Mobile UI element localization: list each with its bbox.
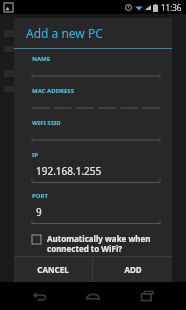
staticText: WIFI SSID [32,119,61,127]
staticText: PORT [32,192,48,200]
staticText: 192.168.1.255 [36,164,102,178]
button[interactable]: Recent apps [132,282,162,310]
staticText: NAME [32,55,51,63]
button[interactable]: ADD [93,257,172,282]
button[interactable]: CANCEL [14,257,92,282]
staticText: ADD [124,264,142,275]
other: Automatically wake when connected to WiF… [32,235,41,244]
staticText: Add a new PC [26,25,103,41]
staticText: 9 [36,205,42,219]
button[interactable]: Back [24,282,54,310]
staticText: IP [32,151,39,159]
staticText: 11:36 [161,2,182,13]
staticText: MAC ADDRESS [32,87,74,95]
button[interactable]: Automatically wake when connected to WiF… [32,233,160,254]
button[interactable]: Home [78,282,108,310]
staticText: Automatically wake when connected to WiF… [47,233,151,254]
staticText: CANCEL [37,264,69,275]
